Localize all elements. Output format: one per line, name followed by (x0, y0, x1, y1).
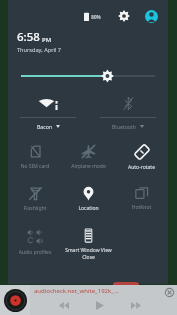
staticText: Airplane mode (62, 163, 115, 170)
staticText: Flashlight (8, 205, 62, 212)
staticText: audiocheck.net_white_192k_... (34, 287, 164, 295)
button[interactable]: Settings (114, 6, 134, 26)
button[interactable]: Bluetooth (88, 91, 168, 135)
staticText: Auto-rotate (115, 164, 168, 171)
staticText: Thursday, April 7 (17, 46, 62, 54)
button[interactable]: Smart Window View Close (62, 225, 115, 263)
button[interactable]: Location (62, 183, 115, 215)
button[interactable]: Audio profiles (8, 225, 62, 259)
button[interactable]: Auto-rotate (115, 141, 168, 174)
button[interactable]: Previous (57, 299, 70, 312)
button[interactable]: Brightness (8, 65, 168, 87)
button[interactable]: No SIM card (8, 141, 62, 173)
button[interactable]: audiocheck.net_white_192k_... (0, 285, 177, 315)
staticText: PM (42, 36, 52, 44)
staticText: HotKnot (115, 204, 168, 211)
button[interactable]: Airplane mode (62, 141, 115, 173)
button[interactable]: Dismiss (164, 287, 175, 298)
button[interactable]: HotKnot (115, 183, 168, 214)
staticText: Bluetooth (112, 123, 137, 130)
staticText: Audio profiles (8, 249, 62, 256)
staticText: 80% (91, 14, 101, 20)
staticText: Bacon (37, 123, 53, 130)
button[interactable]: Play (93, 299, 106, 312)
staticText: Location (62, 205, 115, 212)
staticText: No SIM card (8, 163, 62, 170)
button[interactable]: Next (129, 299, 142, 312)
button[interactable]: Flashlight (8, 183, 62, 215)
staticText: Smart Window View Close (62, 247, 115, 260)
staticText: 6:58 (17, 29, 40, 45)
button[interactable]: Bacon (8, 91, 88, 135)
button[interactable]: User profile (141, 6, 161, 26)
